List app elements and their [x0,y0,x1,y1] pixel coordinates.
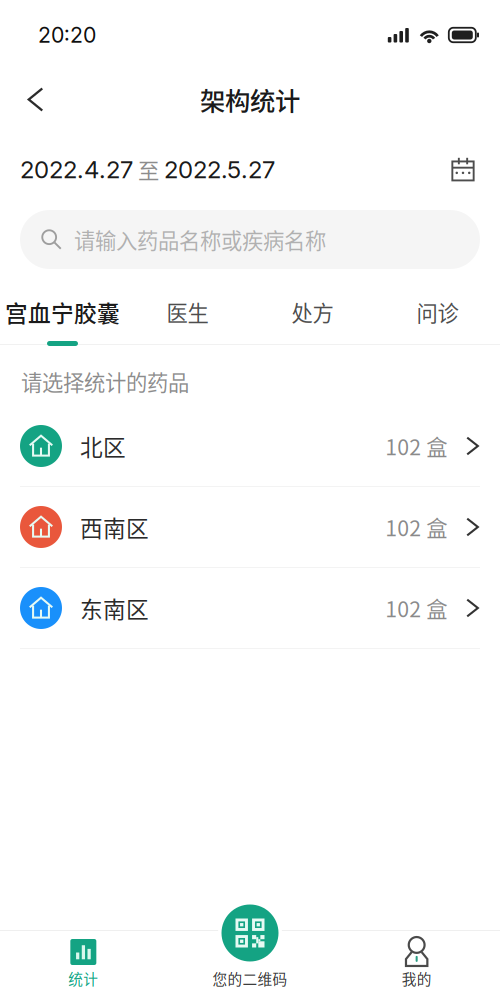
staticText: 我的 [402,968,432,989]
button[interactable]: 西南区 [0,487,500,568]
button[interactable]: 我的 [333,931,500,1000]
staticText: 至 [133,154,164,185]
staticText: 医生 [166,297,208,327]
staticText: 2022.5.27 [164,155,275,184]
staticText: 102 盒 [385,512,447,542]
staticText: 处方 [291,297,333,327]
staticText: 20:20 [38,22,96,48]
staticText: 架构统计 [200,81,300,118]
staticText: 东南区 [80,592,149,624]
button[interactable]: 请输入药品名称或疾病名称 [20,210,480,269]
staticText: 您的二维码 [212,968,287,989]
staticText: 北区 [80,430,126,462]
staticText: 102 盒 [385,593,447,623]
staticText: 问诊 [416,297,458,327]
staticText: 102 盒 [385,431,447,461]
staticText: 宫血宁胶囊 [5,296,120,328]
button[interactable]: 东南区 [0,568,500,649]
staticText: 统计 [68,968,98,989]
button[interactable]: 医生 [125,269,250,345]
staticText: 西南区 [80,511,149,543]
staticText: 2022.4.27 [20,155,133,184]
button[interactable]: 北区 [0,406,500,487]
button[interactable]: 统计 [0,931,167,1000]
button[interactable]: 处方 [250,269,375,345]
button[interactable]: 您的二维码 [167,931,333,1000]
button[interactable]: Your QR code [218,901,282,965]
staticText: 请选择统计的药品 [21,366,189,397]
button[interactable]: 问诊 [375,269,500,345]
button[interactable]: Choose date range [446,152,480,186]
button[interactable]: Back [9,77,53,121]
staticText: 请输入药品名称或疾病名称 [74,224,326,255]
button[interactable]: 宫血宁胶囊 [0,269,125,345]
